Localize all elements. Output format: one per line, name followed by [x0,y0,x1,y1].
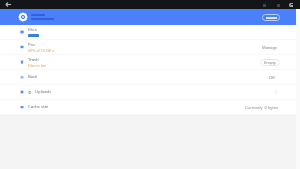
staticText: Files in bin [28,63,47,68]
staticText: G [289,1,294,9]
staticText: Trash [28,57,39,63]
button[interactable] [0,9,296,25]
button[interactable]: Pro [0,40,296,54]
staticText: 50% of 15 GB u [28,48,55,53]
button[interactable]: Back [4,0,13,9]
button[interactable]: Cache size [0,100,296,114]
button[interactable]: Back [0,70,296,84]
staticText: Off [269,75,275,80]
staticText: Currently 0 bytes [245,105,278,110]
staticText: Files [28,27,37,33]
staticText: Uploads [35,89,52,95]
button[interactable]: Files [0,25,296,39]
staticText: Cache size [28,104,49,110]
button[interactable]: Trash [0,55,296,69]
button[interactable]: Empty [260,59,280,66]
staticText: Manage [262,45,278,50]
button[interactable] [262,14,280,21]
staticText: ⚙ [28,90,32,95]
staticText: Pro [28,42,35,48]
button[interactable]: ⚙ [0,85,296,99]
staticText: Empty [264,60,276,65]
staticText: Back [28,74,38,80]
